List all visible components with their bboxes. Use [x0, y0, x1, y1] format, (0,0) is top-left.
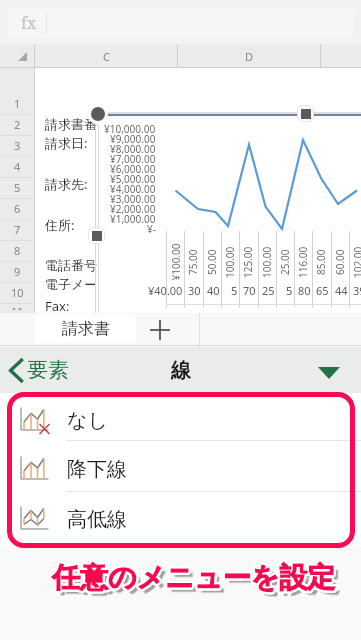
staticText: 2 [14, 117, 21, 132]
staticText: 30 [188, 283, 201, 297]
staticText: 60.00 [333, 249, 347, 275]
button[interactable]: 高低線 [0, 493, 361, 545]
staticText: 任意のメニューを設定 [51, 559, 335, 594]
staticText: Fax: [45, 297, 70, 315]
staticText: C [103, 49, 110, 64]
staticText: 5 [286, 283, 293, 297]
staticText: 25.00 [278, 249, 292, 275]
staticText: 任意のメニューを設定 [52, 560, 336, 595]
staticText: 任意のメニューを設定 [53, 559, 337, 594]
staticText: 任意のメニューを設定 [52, 562, 336, 597]
staticText: 請求日: [45, 134, 88, 152]
staticText: 70 [243, 283, 256, 297]
staticText: 任意のメニューを設定 [50, 560, 334, 595]
staticText: 80 [298, 283, 311, 297]
staticText: 9 [14, 264, 21, 279]
button[interactable]: 要素 [8, 347, 69, 393]
staticText: 任意のメニューを設定 [53, 561, 337, 596]
staticText: 電話番号 [45, 257, 97, 273]
staticText: ¥100.00 [168, 243, 182, 280]
staticText: 11 [11, 304, 24, 310]
staticText: 100.00 [223, 246, 237, 278]
staticText: 50.00 [205, 249, 219, 275]
staticText: 任意のメニューを設定 [52, 559, 336, 594]
staticText: 1 [14, 96, 21, 111]
button[interactable]: 降下線 [0, 444, 361, 494]
staticText: ¥10,000.00 [104, 122, 156, 134]
staticText: 25 [262, 283, 275, 297]
button[interactable]: Collapse [306, 350, 352, 396]
staticText: 任意のメニューを設定 [52, 561, 336, 596]
staticText: ¥8,000.00 [110, 142, 156, 154]
staticText: 10 [11, 285, 24, 300]
staticText: 住所: [45, 216, 75, 234]
staticText: ¥7,000.00 [110, 152, 156, 164]
staticText: ¥9,000.00 [110, 132, 156, 144]
staticText: ¥1,000.00 [110, 212, 156, 224]
staticText: ¥2,000.00 [110, 202, 156, 214]
staticText: D [245, 49, 254, 64]
staticText: 任意のメニューを設定 [56, 565, 340, 600]
staticText: 任意のメニューを設定 [57, 564, 341, 599]
staticText: 5 [231, 283, 238, 297]
staticText: ¥3,000.00 [110, 192, 156, 204]
staticText: 任意のメニューを設定 [50, 559, 334, 594]
staticText: 5 [14, 180, 21, 195]
staticText: ¥6,000.00 [110, 162, 156, 174]
staticText: 6 [14, 201, 21, 216]
staticText: 請求先: [45, 175, 88, 193]
staticText: 85.00 [314, 249, 328, 275]
staticText: 任意のメニューを設定 [51, 560, 335, 595]
staticText: なし [67, 408, 108, 433]
staticText: ¥- [147, 222, 156, 234]
staticText: 75.00 [186, 249, 200, 275]
staticText: 65 [316, 283, 329, 297]
staticText: 4 [14, 159, 21, 174]
button[interactable]: Add sheet [138, 313, 182, 347]
staticText: 任意のメニューを設定 [52, 558, 336, 593]
staticText: ¥4,000.00 [110, 182, 156, 194]
staticText: 任意のメニューを設定 [51, 561, 335, 596]
staticText: 高低線 [67, 507, 127, 532]
staticText: 39 [353, 283, 361, 297]
staticText: 任意のメニューを設定 [53, 560, 337, 595]
staticText: 任意のメニューを設定 [54, 561, 338, 596]
staticText: 125.00 [241, 246, 255, 278]
staticText: 請求書 [62, 319, 110, 339]
staticText: 任意のメニューを設定 [54, 560, 338, 595]
staticText: 7 [14, 222, 21, 237]
staticText: 電子メー [45, 276, 98, 292]
staticText: 任意のメニューを設定 [53, 562, 337, 597]
button[interactable]: なし [0, 397, 361, 444]
staticText: 任意のメニューを設定 [56, 564, 340, 599]
staticText: 8 [14, 243, 21, 258]
staticText: 要素 [27, 357, 69, 383]
staticText: ¥40.00 [148, 283, 183, 297]
staticText: 40 [207, 283, 220, 297]
button[interactable]: 請求書 [35, 314, 136, 343]
staticText: 任意のメニューを設定 [51, 558, 335, 593]
staticText: 100.00 [260, 246, 274, 278]
staticText: 任意のメニューを設定 [54, 559, 338, 594]
staticText: 線 [171, 358, 191, 383]
staticText: 降下線 [67, 457, 127, 482]
staticText: fx [21, 12, 37, 34]
staticText: 請求書番 [45, 116, 97, 132]
staticText: ¥5,000.00 [110, 172, 156, 184]
staticText: 任意のメニューを設定 [51, 562, 335, 597]
staticText: 3 [14, 138, 21, 153]
staticText: 44 [335, 283, 348, 297]
staticText: 任意のメニューを設定 [50, 561, 334, 596]
staticText: 任意のメニューを設定 [53, 558, 337, 593]
staticText: 116.00 [296, 246, 310, 278]
staticText: 102.00 [351, 246, 361, 278]
